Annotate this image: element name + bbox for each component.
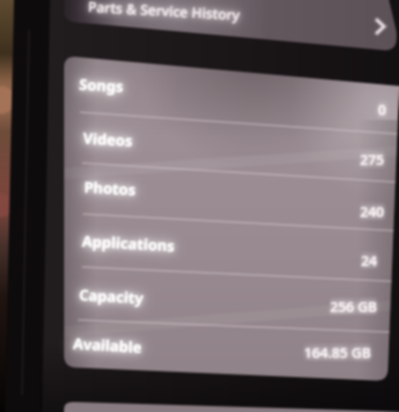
staticText: Videos [82,128,133,150]
staticText: Capacity [78,284,144,308]
button[interactable]: Photos [60,163,392,213]
staticText: 164.85 GB [304,343,371,361]
staticText: 164.85 GB [304,343,371,361]
staticText: Available [72,333,142,357]
staticText: 24 [361,251,378,269]
staticText: 275 [360,150,385,168]
staticText: 256 GB [330,297,377,315]
staticText: Photos [83,177,136,199]
staticText: Applications [81,230,175,256]
staticText: 0 [378,100,387,118]
staticText: Songs [78,74,124,96]
staticText: Songs [78,74,124,96]
staticText: Parts & Service History [88,0,240,24]
button[interactable]: Applications [60,218,392,268]
staticText: 240 [360,202,385,220]
staticText: Available [72,333,142,357]
button[interactable]: Videos [60,114,392,164]
staticText: Capacity [78,284,144,308]
button[interactable]: Available [60,320,392,370]
button[interactable]: Capacity [60,271,392,321]
staticText: Videos [82,128,133,150]
staticText: Applications [81,230,175,256]
staticText: Photos [83,177,136,199]
staticText: 256 GB [330,297,377,315]
staticText: 275 [360,150,385,168]
staticText: Parts & Service History [88,0,240,24]
button[interactable]: Songs [60,60,392,110]
button[interactable]: Parts & Service History [64,0,397,45]
staticText: 240 [360,202,385,220]
staticText: 24 [361,251,378,269]
staticText: 0 [378,100,387,118]
